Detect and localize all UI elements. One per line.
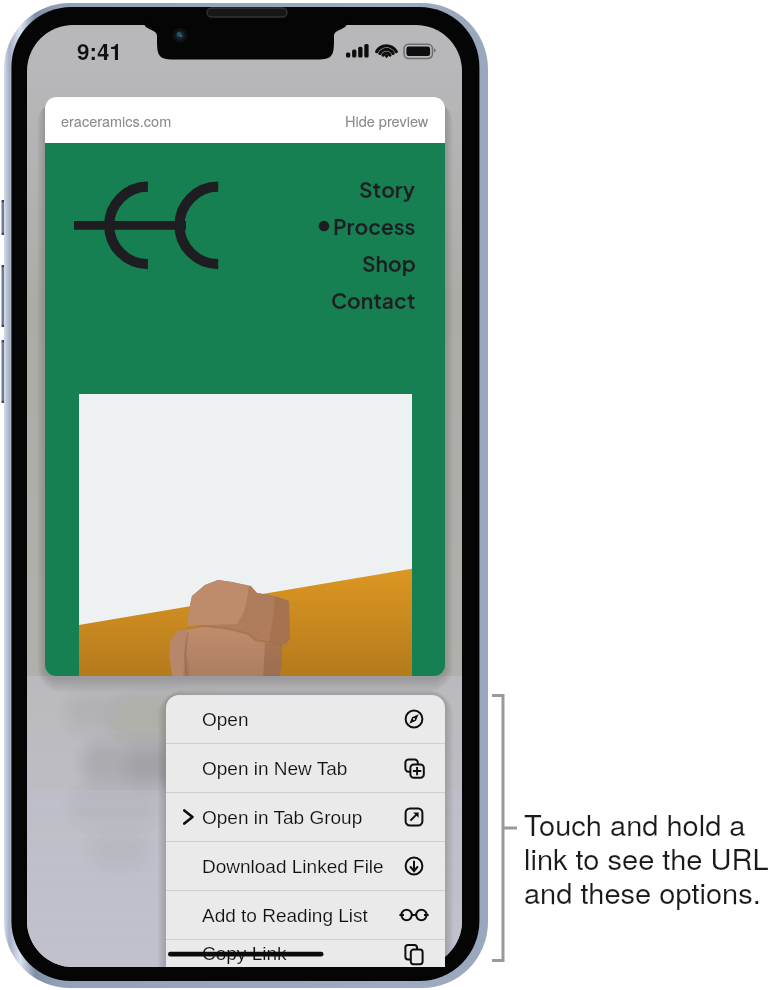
staticText: Download Linked File — [202, 856, 384, 877]
staticText: Shop — [362, 250, 416, 276]
button[interactable]: eraceramics.com — [45, 97, 445, 676]
staticText: eraceramics.com — [61, 110, 172, 131]
staticText: Touch and hold a link to see the URL and… — [524, 803, 769, 912]
button[interactable]: Contact — [45, 281, 445, 318]
staticText: Story — [359, 176, 416, 202]
staticText: 9:41 — [77, 35, 123, 67]
button[interactable]: Story — [45, 170, 445, 207]
button[interactable]: Copy Link — [166, 940, 445, 967]
staticText: Hide preview — [345, 110, 429, 131]
button[interactable]: Open — [166, 695, 445, 743]
staticText: Open in New Tab — [202, 758, 348, 779]
button[interactable]: Process — [45, 207, 445, 244]
button[interactable]: Add to Reading List — [166, 891, 445, 939]
button[interactable]: Open in New Tab — [166, 744, 445, 792]
button[interactable]: Hide preview — [345, 110, 429, 131]
staticText: Contact — [331, 287, 416, 313]
button[interactable]: Open in Tab Group — [166, 793, 445, 841]
staticText: Open in Tab Group — [202, 807, 363, 828]
button[interactable]: Shop — [45, 244, 445, 281]
button[interactable]: Download Linked File — [166, 842, 445, 890]
staticText: Process — [333, 213, 416, 239]
staticText: Add to Reading List — [202, 905, 368, 926]
staticText: Open — [202, 709, 249, 730]
staticText: Copy Link — [202, 943, 287, 964]
